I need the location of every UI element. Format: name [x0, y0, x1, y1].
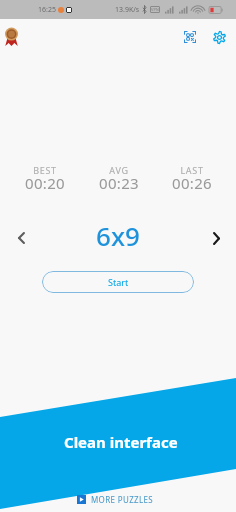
staticText: LAST	[180, 164, 204, 176]
staticText: BEST	[33, 164, 57, 176]
button[interactable]: Start	[42, 271, 194, 293]
button[interactable]: Settings	[207, 25, 231, 49]
button[interactable]: MORE PUZZLES	[77, 494, 154, 505]
staticText: 00:23	[99, 173, 139, 193]
button[interactable]: Previous size	[0, 218, 43, 252]
button[interactable]: Next size	[197, 218, 236, 252]
staticText: MORE PUZZLES	[91, 494, 154, 505]
staticText: 6x9	[41, 218, 195, 252]
staticText: AVG	[109, 164, 129, 176]
staticText: 13.9K/s	[115, 5, 140, 15]
staticText: Clean interface	[64, 432, 178, 452]
staticText: Start	[108, 276, 129, 288]
staticText: 00:26	[172, 173, 212, 193]
staticText: 16:25	[38, 5, 56, 15]
staticText: VPN	[151, 7, 159, 12]
button[interactable]: Scan	[178, 25, 202, 49]
button[interactable]: Achievements	[5, 28, 18, 46]
staticText: 00:20	[25, 173, 65, 193]
